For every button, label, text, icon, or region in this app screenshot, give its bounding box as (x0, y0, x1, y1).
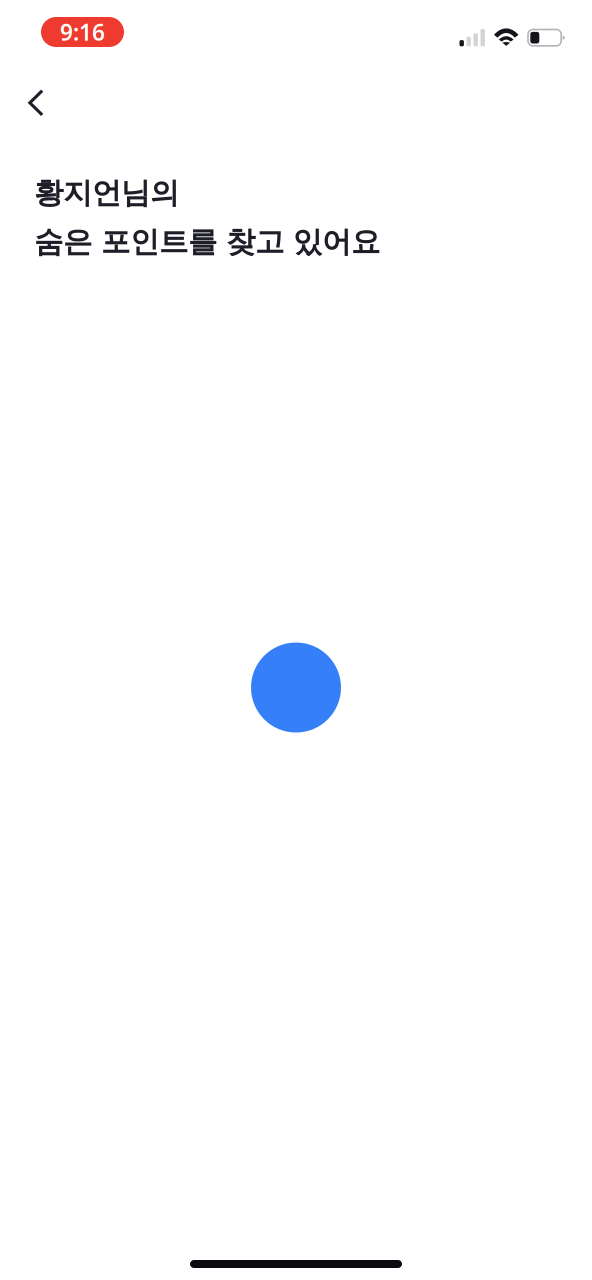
button[interactable]: Back (14, 81, 58, 125)
staticText: 숨은 포인트를 찾고 있어요 (34, 224, 380, 260)
staticText: 황지언님의 (34, 175, 179, 211)
staticText: 9:16 (60, 17, 105, 47)
